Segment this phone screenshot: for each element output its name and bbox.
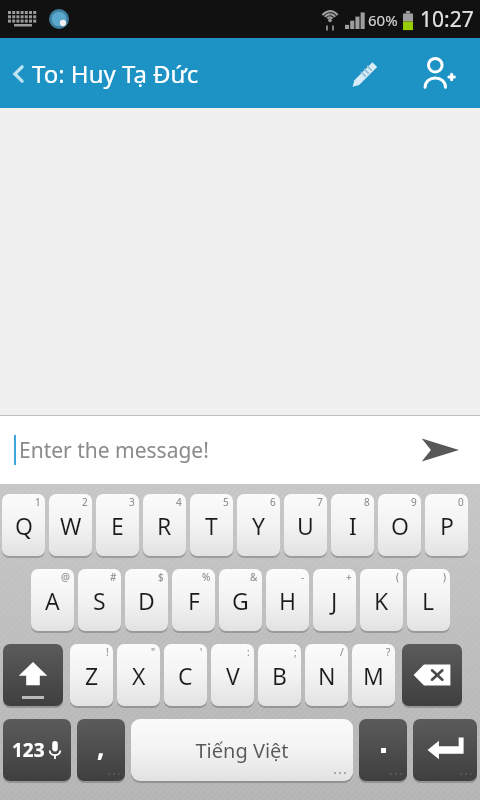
- staticText: 0: [458, 495, 464, 509]
- button[interactable]: M: [352, 644, 395, 706]
- button[interactable]: B: [258, 644, 301, 706]
- staticText: 4: [176, 495, 182, 509]
- staticText: 8: [364, 495, 370, 509]
- staticText: M: [363, 660, 384, 691]
- staticText: ,: [97, 729, 105, 764]
- button[interactable]: Q: [2, 494, 45, 556]
- staticText: R: [157, 510, 172, 541]
- staticText: &: [250, 570, 258, 584]
- staticText: L: [422, 585, 435, 616]
- staticText: #: [110, 570, 117, 584]
- button[interactable]: S: [78, 569, 121, 631]
- staticText: W: [60, 510, 82, 541]
- button[interactable]: Enter the message!: [14, 435, 412, 465]
- staticText: ': [200, 645, 203, 659]
- button[interactable]: Backspace: [402, 644, 462, 706]
- staticText: S: [93, 585, 106, 616]
- button[interactable]: Send: [412, 422, 468, 478]
- staticText: 9: [411, 495, 417, 509]
- staticText: B: [272, 660, 287, 691]
- button[interactable]: R: [143, 494, 186, 556]
- button[interactable]: V: [211, 644, 254, 706]
- staticText: T: [205, 510, 218, 541]
- button[interactable]: T: [190, 494, 233, 556]
- staticText: -: [301, 570, 305, 584]
- staticText: V: [226, 660, 240, 691]
- button[interactable]: E: [96, 494, 139, 556]
- staticText: /: [340, 645, 344, 659]
- button[interactable]: Shift: [3, 644, 63, 706]
- button[interactable]: Back: [6, 57, 199, 90]
- button[interactable]: C: [164, 644, 207, 706]
- staticText: I: [349, 510, 357, 541]
- staticText: 7: [317, 495, 323, 509]
- staticText: $: [158, 570, 164, 584]
- button[interactable]: W: [49, 494, 92, 556]
- button[interactable]: H: [266, 569, 309, 631]
- button[interactable]: Y: [237, 494, 280, 556]
- staticText: Q: [15, 510, 33, 541]
- staticText: U: [297, 510, 314, 541]
- button[interactable]: A: [31, 569, 74, 631]
- staticText: ;: [294, 645, 297, 659]
- staticText: Y: [252, 510, 266, 541]
- staticText: N: [318, 660, 336, 691]
- button[interactable]: Period: [359, 719, 407, 781]
- button[interactable]: J: [313, 569, 356, 631]
- button[interactable]: Z: [70, 644, 113, 706]
- staticText: 60%: [368, 10, 398, 30]
- staticText: %: [202, 570, 211, 584]
- staticText: P: [440, 510, 454, 541]
- staticText: (: [396, 570, 399, 584]
- staticText: H: [279, 585, 297, 616]
- staticText: ?: [386, 645, 391, 659]
- staticText: @: [61, 570, 70, 584]
- staticText: 123: [12, 737, 45, 763]
- staticText: G: [232, 585, 249, 616]
- staticText: Tiếng Việt: [195, 737, 289, 764]
- button[interactable]: K: [360, 569, 403, 631]
- button[interactable]: F: [172, 569, 215, 631]
- staticText: Z: [85, 660, 99, 691]
- other: Back: [6, 59, 32, 89]
- staticText: D: [138, 585, 155, 616]
- staticText: X: [132, 660, 146, 691]
- staticText: !: [106, 645, 109, 659]
- staticText: C: [178, 660, 193, 691]
- button[interactable]: L: [407, 569, 450, 631]
- staticText: A: [45, 585, 60, 616]
- button[interactable]: I: [331, 494, 374, 556]
- button[interactable]: D: [125, 569, 168, 631]
- button[interactable]: Compose: [340, 49, 388, 97]
- staticText: J: [331, 585, 338, 616]
- button[interactable]: U: [284, 494, 327, 556]
- staticText: 3: [129, 495, 135, 509]
- staticText: Enter the message!: [19, 436, 209, 465]
- staticText: 5: [223, 495, 229, 509]
- staticText: 1: [35, 495, 41, 509]
- staticText: K: [374, 585, 389, 616]
- staticText: 6: [270, 495, 276, 509]
- staticText: ": [151, 645, 156, 659]
- staticText: 10:27: [420, 5, 474, 34]
- button[interactable]: N: [305, 644, 348, 706]
- button[interactable]: O: [378, 494, 421, 556]
- button[interactable]: Comma: [77, 719, 125, 781]
- staticText: O: [391, 510, 409, 541]
- button[interactable]: Tiếng Việt: [131, 719, 353, 781]
- staticText: +: [346, 570, 352, 584]
- staticText: ): [443, 570, 446, 584]
- staticText: F: [188, 585, 200, 616]
- button[interactable]: Add contact: [412, 47, 464, 99]
- button[interactable]: Symbols and voice input: [3, 719, 71, 781]
- staticText: E: [111, 510, 124, 541]
- button[interactable]: P: [425, 494, 468, 556]
- staticText: 2: [82, 495, 88, 509]
- staticText: :: [247, 645, 250, 659]
- button[interactable]: G: [219, 569, 262, 631]
- staticText: To: Huy Tạ Đức: [32, 57, 199, 90]
- button[interactable]: Enter: [413, 719, 477, 781]
- button[interactable]: X: [117, 644, 160, 706]
